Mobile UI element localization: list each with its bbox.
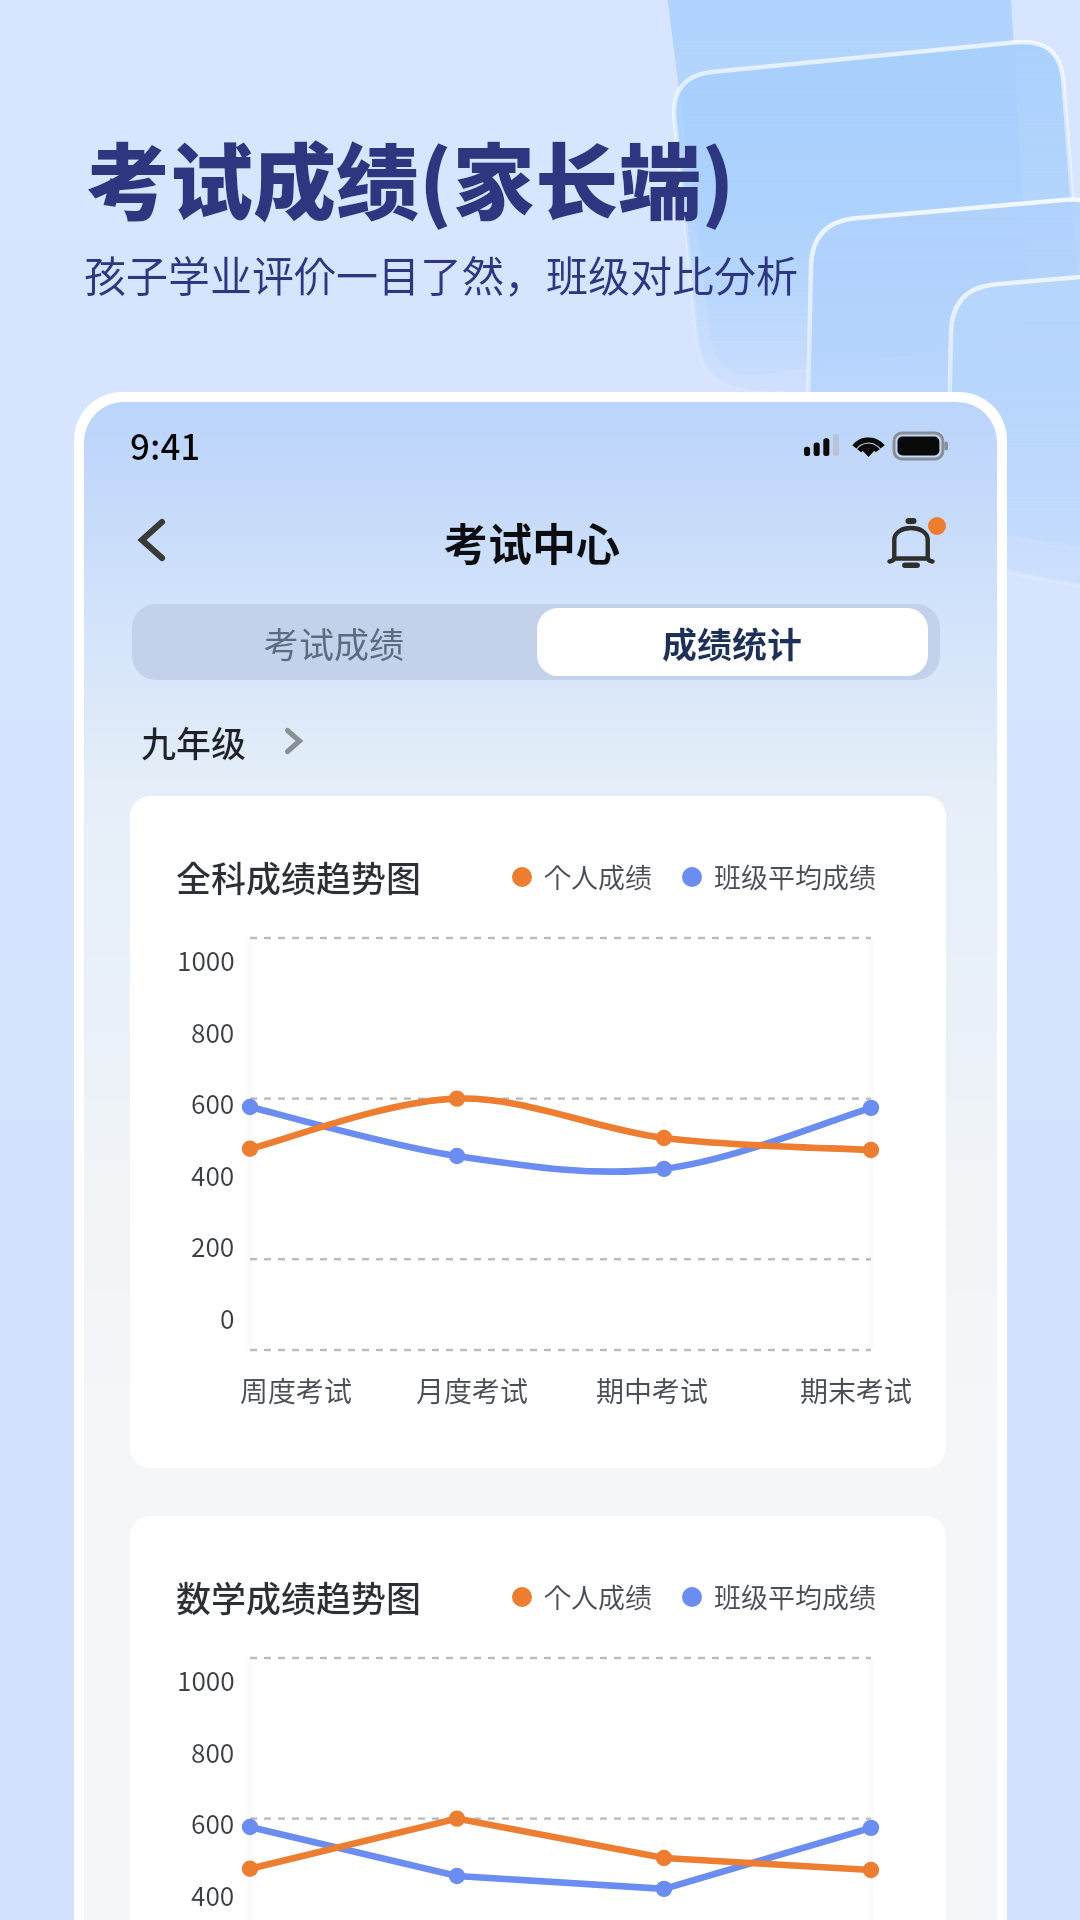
staticText: 800 xyxy=(191,1733,235,1771)
staticText: 9:41 xyxy=(130,419,201,470)
staticText: 个人成绩 xyxy=(544,857,652,896)
staticText: 个人成绩 xyxy=(544,1577,652,1616)
staticText: 600 xyxy=(191,1084,235,1122)
staticText: 期中考试 xyxy=(596,1370,709,1411)
button[interactable]: 成绩统计 xyxy=(537,608,928,676)
button[interactable]: 九年级 xyxy=(129,712,302,770)
staticText: 九年级 xyxy=(141,716,247,767)
staticText: 1000 xyxy=(177,941,235,979)
button[interactable]: Notifications xyxy=(874,502,954,582)
staticText: 考试中心 xyxy=(444,510,620,574)
staticText: 400 xyxy=(191,1876,235,1914)
staticText: 考试成绩(家长端) xyxy=(87,117,735,237)
staticText: 800 xyxy=(191,1013,235,1051)
staticText: 考试成绩 xyxy=(264,617,405,668)
staticText: 班级平均成绩 xyxy=(714,1577,876,1616)
staticText: 周度考试 xyxy=(240,1370,353,1411)
staticText: 孩子学业评价一目了然，班级对比分析 xyxy=(84,243,799,304)
staticText: 200 xyxy=(191,1227,235,1265)
staticText: 月度考试 xyxy=(416,1370,529,1411)
staticText: 0 xyxy=(220,1299,235,1337)
staticText: 1000 xyxy=(177,1661,235,1699)
staticText: 400 xyxy=(191,1156,235,1194)
staticText: 数学成绩趋势图 xyxy=(176,1571,422,1622)
staticText: 期末考试 xyxy=(800,1370,913,1411)
staticText: 班级平均成绩 xyxy=(714,857,876,896)
button[interactable]: 考试成绩 xyxy=(132,604,537,680)
button[interactable]: Back xyxy=(120,508,184,572)
staticText: 600 xyxy=(191,1804,235,1842)
staticText: 全科成绩趋势图 xyxy=(176,851,422,902)
staticText: 成绩统计 xyxy=(662,617,803,668)
